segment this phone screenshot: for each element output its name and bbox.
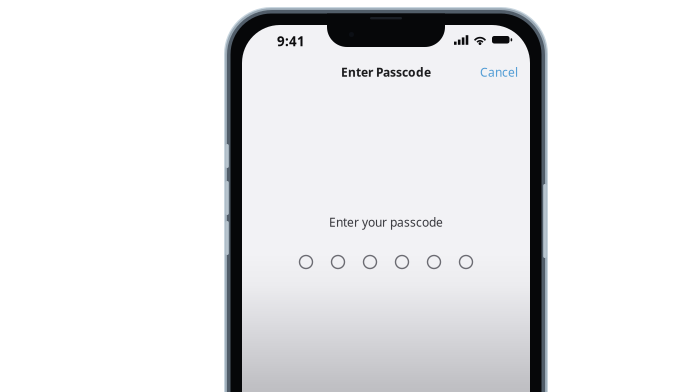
staticText: Enter your passcode: [329, 214, 443, 230]
staticText: Enter Passcode: [341, 64, 431, 80]
staticText: 9:41: [277, 32, 305, 50]
button[interactable]: Cancel: [472, 63, 518, 81]
button[interactable]: Passcode field: [242, 254, 530, 270]
staticText: Cancel: [480, 64, 518, 80]
